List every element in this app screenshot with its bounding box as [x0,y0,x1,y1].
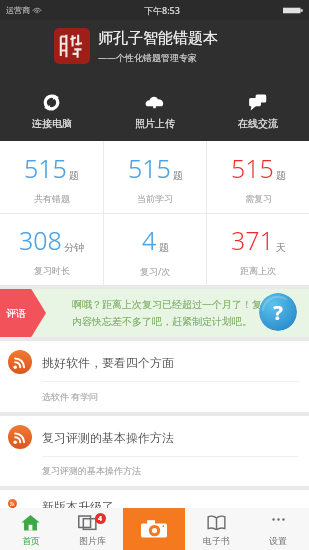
staticText: 题 [159,241,169,254]
staticText: 运营商 [6,5,30,15]
staticText: 连接电脑 [32,117,72,130]
staticText: 新版本升级了 [42,499,114,508]
staticText: 内容快忘差不多了吧，赶紧制定计划吧。 [72,315,252,328]
staticText: 371 [231,223,274,257]
staticText: 复习时长 [34,265,70,276]
staticText: 题 [173,169,183,182]
staticText: 设置 [269,535,287,546]
staticText: 308 [19,223,62,257]
staticText: ——个性化错题管理专家 [98,51,198,63]
staticText: 515 [128,151,171,185]
staticText: ? [273,299,283,326]
staticText: 首页 [22,535,40,546]
staticText: 题 [276,169,286,182]
staticText: 选软件 有学问 [42,390,99,402]
button[interactable]: 515 [207,141,309,213]
staticText: 需复习 [245,193,272,204]
staticText: 师孔子智能错题本 [98,29,218,48]
staticText: 图片库 [79,535,106,546]
button[interactable]: 515 [104,141,206,213]
staticText: 515 [24,151,67,185]
staticText: 复习评测的基本操作方法 [42,430,174,445]
staticText: 复习评测的基本操作方法 [42,465,141,476]
button[interactable]: 首页 [0,508,61,550]
button[interactable]: 拍照 [123,508,185,550]
button[interactable]: 4 [104,214,206,285]
staticText: 515 [231,151,274,185]
staticText: 距离上次 [240,265,276,276]
button[interactable]: 515 [0,141,103,213]
staticText: 下午8:53 [144,4,180,16]
button[interactable]: 4 [61,508,123,550]
staticText: 评语 [6,307,26,320]
staticText: 啊哦？距离上次复习已经超过一个月了！复习的 [72,298,282,311]
staticText: 当前学习 [137,193,173,204]
staticText: 复习/次 [140,265,171,277]
button[interactable]: 帮助 [259,293,297,331]
staticText: 照片上传 [135,117,175,130]
button[interactable]: 新版本升级了 [0,490,309,508]
staticText: 电子书 [203,535,230,546]
button[interactable]: 电子书 [185,508,247,550]
button[interactable]: 在线交流 [206,91,309,132]
staticText: 4 [98,514,103,524]
button[interactable]: 复习评测的基本操作方法 [0,416,309,486]
staticText: 题 [69,169,79,182]
staticText: 共有错题 [34,193,70,204]
staticText: 挑好软件，要看四个方面 [42,355,174,370]
button[interactable]: 评语 [0,289,309,337]
button[interactable]: 挑好软件，要看四个方面 [0,341,309,412]
staticText: 分钟 [64,241,84,254]
button[interactable]: 371 [207,214,309,285]
button[interactable]: 照片上传 [103,91,206,132]
button[interactable]: 308 [0,214,103,285]
button[interactable]: 设置 [247,508,309,550]
button[interactable]: 连接电脑 [0,91,103,132]
staticText: 在线交流 [238,117,278,130]
staticText: 天 [276,241,286,254]
staticText: 4 [142,223,157,257]
